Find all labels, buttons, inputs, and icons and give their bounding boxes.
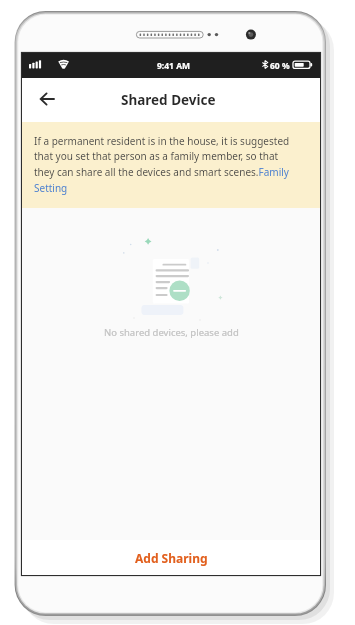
staticText: No shared devices, please add — [104, 326, 239, 339]
staticText: If a permanent resident is in the house,… — [34, 134, 296, 195]
staticText: 60 % — [270, 60, 290, 72]
staticText: 9:41 AM — [157, 60, 191, 72]
staticText: Shared Device — [121, 91, 216, 109]
button[interactable]: Add Sharing — [22, 540, 320, 575]
staticText: Add Sharing — [135, 550, 208, 566]
button[interactable]: Back — [33, 86, 61, 114]
